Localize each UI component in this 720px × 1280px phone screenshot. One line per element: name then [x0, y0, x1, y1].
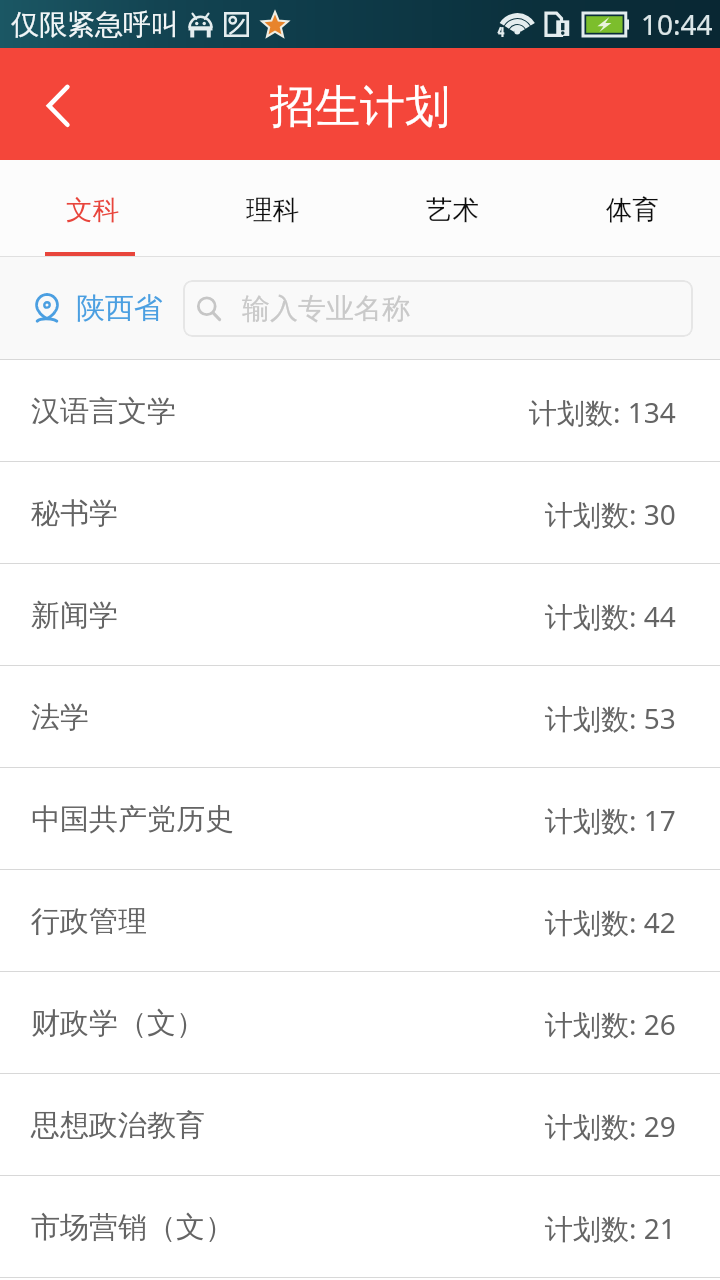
staticText: 仅限紧急呼叫 [11, 7, 179, 42]
button[interactable]: 中国共产党历史 [0, 768, 720, 869]
staticText: 招生计划 [270, 79, 450, 136]
staticText: 中国共产党历史 [31, 801, 234, 838]
staticText: 艺术 [426, 193, 479, 226]
staticText: 汉语言文学 [31, 393, 176, 430]
staticText: 体育 [606, 193, 659, 226]
button[interactable]: 陕西省 [34, 290, 163, 327]
button[interactable]: 思想政治教育 [0, 1074, 720, 1175]
staticText: 秘书学 [31, 495, 118, 532]
button[interactable]: 艺术 [360, 160, 540, 257]
staticText: 文科 [66, 193, 119, 226]
button[interactable]: 新闻学 [0, 564, 720, 665]
staticText: 理科 [246, 193, 299, 226]
button[interactable]: 行政管理 [0, 870, 720, 971]
staticText: 计划数: 21 [545, 1209, 676, 1247]
staticText: 行政管理 [31, 903, 147, 940]
staticText: 市场营销（文） [31, 1209, 234, 1246]
button[interactable]: 汉语言文学 [0, 360, 720, 461]
staticText: 输入专业名称 [242, 291, 410, 326]
staticText: 计划数: 44 [545, 597, 676, 635]
button[interactable]: 财政学（文） [0, 972, 720, 1073]
staticText: 财政学（文） [31, 1005, 205, 1042]
staticText: 计划数: 26 [545, 1005, 676, 1043]
staticText: 计划数: 17 [545, 801, 676, 839]
staticText: 计划数: 29 [545, 1107, 676, 1145]
button[interactable]: 理科 [180, 160, 360, 257]
staticText: 10:44 [641, 5, 713, 43]
staticText: 法学 [31, 699, 89, 736]
staticText: 陕西省 [76, 290, 163, 327]
button[interactable]: Back [0, 48, 112, 160]
staticText: 新闻学 [31, 597, 118, 634]
button[interactable]: 市场营销（文） [0, 1176, 720, 1277]
button[interactable]: 文科 [0, 160, 180, 257]
staticText: 思想政治教育 [31, 1107, 205, 1144]
staticText: 计划数: 53 [545, 699, 676, 737]
button[interactable]: 输入专业名称 [183, 280, 693, 337]
staticText: 计划数: 42 [545, 903, 676, 941]
staticText: 计划数: 30 [545, 495, 676, 533]
button[interactable]: 法学 [0, 666, 720, 767]
button[interactable]: 秘书学 [0, 462, 720, 563]
button[interactable]: 体育 [540, 160, 720, 257]
staticText: 计划数: 134 [529, 393, 676, 431]
